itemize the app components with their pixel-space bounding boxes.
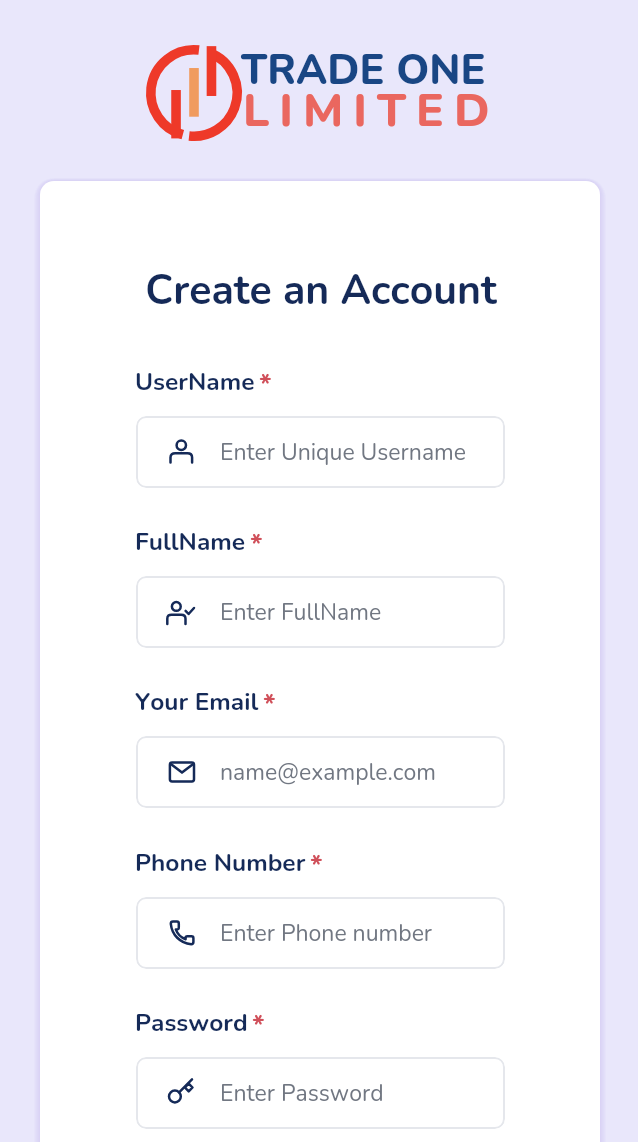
staticText: Phone Number <box>135 846 306 879</box>
staticText: UserName <box>135 365 255 398</box>
staticText: Your Email <box>135 685 259 718</box>
staticText: Password <box>135 1006 248 1039</box>
button[interactable]: Your Email <box>136 736 505 808</box>
staticText: Enter FullName <box>220 597 382 628</box>
staticText: * <box>310 847 323 885</box>
staticText: Create an Account <box>2 263 638 319</box>
staticText: name@example.com <box>220 757 436 788</box>
staticText: Enter Password <box>220 1078 384 1109</box>
button[interactable]: Phone Number <box>136 897 505 969</box>
button[interactable]: UserName <box>136 416 505 488</box>
staticText: Enter Unique Username <box>220 437 467 468</box>
staticText: * <box>263 686 276 724</box>
button[interactable]: FullName <box>136 576 505 648</box>
staticText: TRADE ONE <box>241 42 486 99</box>
staticText: * <box>259 366 272 404</box>
staticText: * <box>250 526 263 564</box>
staticText: * <box>252 1007 265 1045</box>
staticText: LIMITED <box>243 79 500 142</box>
staticText: Enter Phone number <box>220 918 433 949</box>
staticText: FullName <box>135 525 246 558</box>
button[interactable]: Password <box>136 1057 505 1129</box>
